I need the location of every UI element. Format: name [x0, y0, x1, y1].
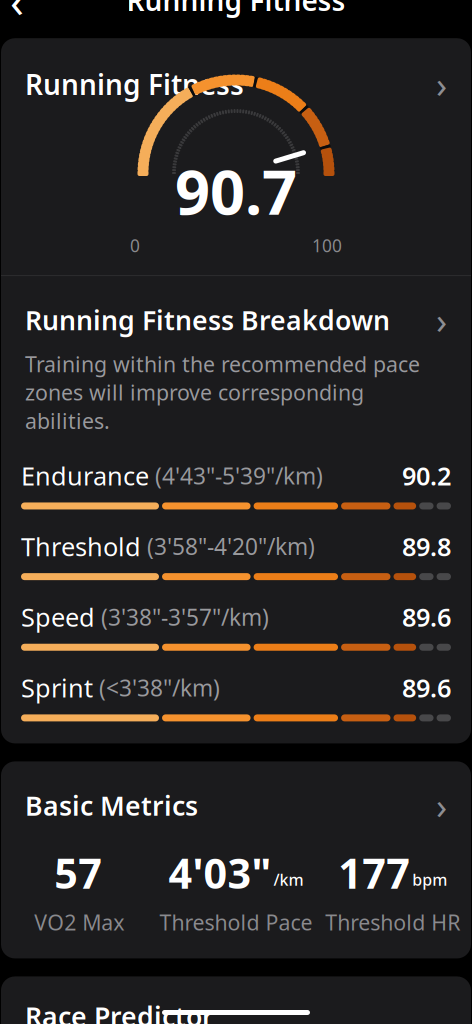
staticText: 89.6: [402, 671, 451, 704]
staticText: 90.2: [402, 459, 451, 492]
staticText: Threshold Pace: [159, 908, 312, 936]
staticText: 57: [54, 845, 102, 900]
staticText: Speed: [21, 600, 95, 634]
staticText: (3'58"-4'20"/km): [141, 531, 315, 561]
staticText: 90.7: [175, 150, 297, 232]
staticText: Running Fitness Breakdown: [25, 302, 390, 338]
staticText: (4'43"-5'39"/km): [149, 461, 323, 491]
staticText: ›: [436, 781, 447, 829]
button[interactable]: Back: [0, 0, 39, 22]
staticText: Endurance: [21, 459, 149, 492]
staticText: Basic Metrics: [25, 788, 198, 823]
button[interactable]: Running Fitness Breakdown: [1, 276, 471, 344]
staticText: Sprint: [21, 671, 93, 704]
button[interactable]: Basic Metrics: [1, 761, 471, 829]
staticText: 4'03": [168, 845, 271, 900]
staticText: ›: [436, 296, 447, 344]
staticText: 89.8: [402, 529, 451, 563]
staticText: 89.6: [402, 600, 451, 634]
staticText: 177: [338, 845, 410, 900]
staticText: ‹: [10, 0, 24, 30]
staticText: bpm: [412, 869, 447, 890]
button[interactable]: Running Fitness: [1, 38, 471, 114]
staticText: Race Predictor: [25, 998, 214, 1024]
staticText: (<3'38"/km): [93, 672, 220, 703]
staticText: (3'38"-3'57"/km): [95, 602, 269, 632]
staticText: /km: [273, 869, 303, 890]
staticText: Training within the recommended pace zon…: [25, 350, 420, 435]
staticText: Running Fitness: [25, 65, 244, 103]
staticText: Threshold HR: [325, 908, 460, 936]
staticText: 0: [130, 234, 140, 257]
staticText: 100: [312, 234, 342, 257]
staticText: ›: [436, 60, 447, 108]
staticText: VO2 Max: [34, 908, 124, 936]
staticText: Threshold: [21, 529, 141, 563]
staticText: Running Fitness: [126, 0, 345, 19]
